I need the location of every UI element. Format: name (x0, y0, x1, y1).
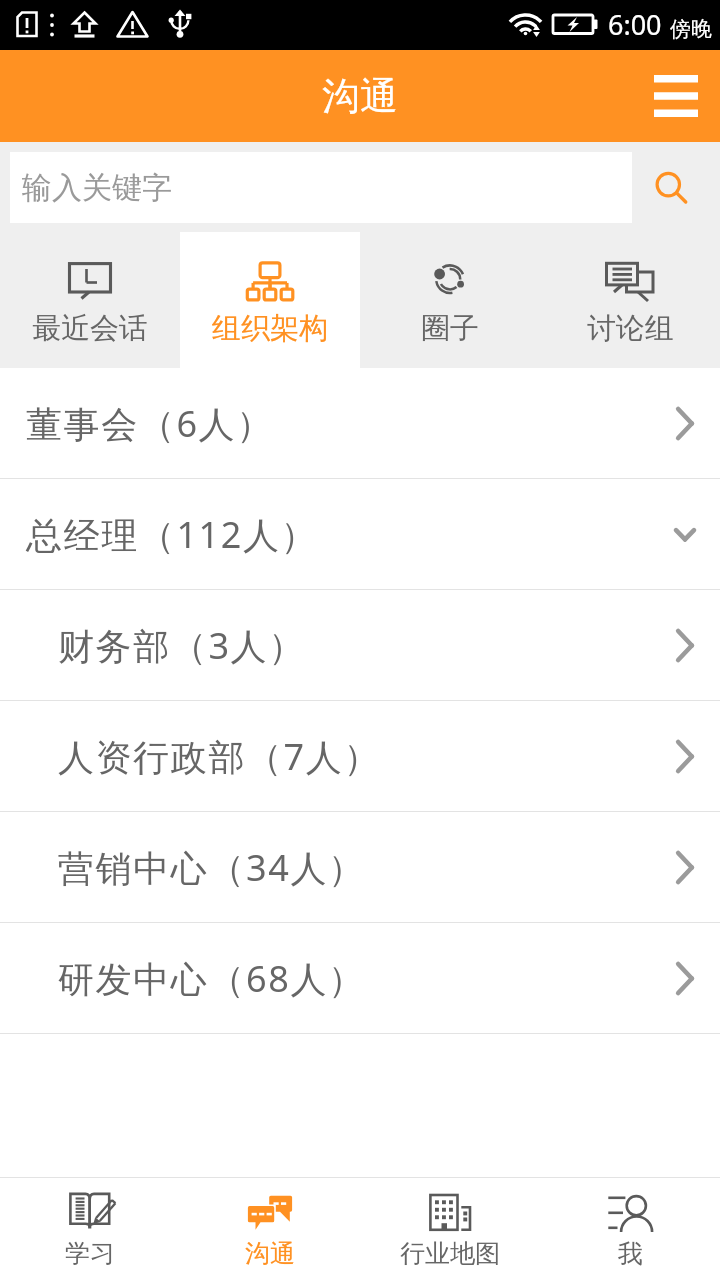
button[interactable]: 组织架构 (180, 232, 360, 368)
button[interactable]: 我 (540, 1178, 720, 1280)
button[interactable]: 总经理（112人） (0, 479, 720, 590)
button[interactable]: Menu (632, 50, 720, 142)
staticText: 我 (618, 1238, 643, 1269)
staticText: 输入关键字 (22, 169, 172, 207)
button[interactable]: 董事会（6人） (0, 368, 720, 479)
button[interactable]: 讨论组 (540, 232, 720, 368)
button[interactable]: 研发中心（68人） (0, 923, 720, 1034)
staticText: 总经理（112人） (26, 510, 319, 559)
staticText: 财务部（3人） (58, 621, 306, 670)
staticText: 最近会话 (32, 310, 148, 347)
staticText: 圈子 (421, 310, 479, 347)
button[interactable]: 圈子 (360, 232, 540, 368)
button[interactable]: 沟通 (180, 1178, 360, 1280)
staticText: 学习 (65, 1238, 115, 1269)
staticText: 组织架构 (212, 310, 328, 347)
button[interactable]: 财务部（3人） (0, 590, 720, 701)
button[interactable]: 最近会话 (0, 232, 180, 368)
staticText: 行业地图 (400, 1238, 500, 1269)
staticText: 沟通 (245, 1238, 295, 1269)
button[interactable]: Search (632, 142, 720, 232)
staticText: 沟通 (322, 72, 398, 120)
staticText: 讨论组 (587, 310, 674, 347)
staticText: 营销中心（34人） (58, 843, 366, 892)
button[interactable]: 人资行政部（7人） (0, 701, 720, 812)
staticText: 人资行政部（7人） (58, 732, 381, 781)
staticText: 6:00 (608, 6, 662, 43)
button[interactable]: 营销中心（34人） (0, 812, 720, 923)
button[interactable]: 输入关键字 (10, 152, 632, 223)
staticText: 董事会（6人） (26, 399, 274, 448)
staticText: 研发中心（68人） (58, 954, 366, 1003)
staticText: 傍晚 (670, 16, 712, 42)
button[interactable]: 行业地图 (360, 1178, 540, 1280)
button[interactable]: 学习 (0, 1178, 180, 1280)
